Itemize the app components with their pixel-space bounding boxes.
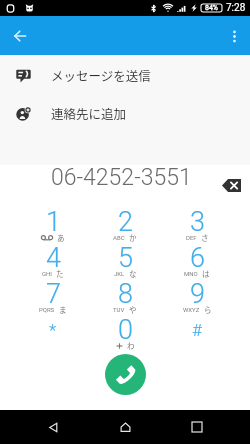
button[interactable]: メッセージを送信 xyxy=(0,56,250,94)
button[interactable]: 0 xyxy=(89,308,161,344)
staticText: 7 xyxy=(46,278,61,310)
staticText: や xyxy=(129,304,137,315)
button[interactable]: # xyxy=(161,308,233,344)
staticText: TUV xyxy=(113,306,125,313)
button[interactable]: 連絡先に追加 xyxy=(0,94,250,132)
button[interactable]: 1 xyxy=(17,200,89,236)
staticText: た xyxy=(56,268,64,279)
staticText: は xyxy=(202,268,210,279)
button[interactable]: 2 xyxy=(89,200,161,236)
button[interactable]: Back xyxy=(17,410,89,444)
button[interactable]: Call xyxy=(105,354,146,395)
button[interactable]: 6 xyxy=(161,236,233,272)
button[interactable]: 3 xyxy=(161,200,233,236)
staticText: か xyxy=(129,232,137,243)
staticText: WXYZ xyxy=(183,306,200,313)
button[interactable]: Back xyxy=(8,24,32,48)
button[interactable]: Backspace xyxy=(219,173,244,198)
staticText: な xyxy=(129,268,137,279)
staticText: GHI xyxy=(42,270,52,277)
staticText: 連絡先に追加 xyxy=(51,104,127,122)
button[interactable]: 8 xyxy=(89,272,161,308)
button[interactable]: Home xyxy=(89,410,161,444)
button[interactable]: 4 xyxy=(17,236,89,272)
staticText: 4 xyxy=(46,242,61,274)
staticText: 84% xyxy=(205,4,218,12)
button[interactable]: 7 xyxy=(17,272,89,308)
staticText: 06-4252-3551 xyxy=(51,164,192,191)
staticText: 3 xyxy=(190,206,205,238)
button[interactable]: * xyxy=(17,308,89,344)
staticText: 6 xyxy=(190,242,205,274)
button[interactable]: 9 xyxy=(161,272,233,308)
staticText: JKL xyxy=(114,270,125,277)
staticText: メッセージを送信 xyxy=(51,66,151,84)
staticText: さ xyxy=(201,232,209,243)
button[interactable]: More options xyxy=(222,24,246,48)
staticText: 1 xyxy=(46,206,61,238)
staticText: * xyxy=(49,320,57,340)
staticText: MNO xyxy=(184,270,198,277)
button[interactable]: 5 xyxy=(89,236,161,272)
staticText: # xyxy=(192,320,202,340)
staticText: 5 xyxy=(118,242,133,274)
staticText: あ xyxy=(57,232,65,243)
staticText: ら xyxy=(204,304,212,315)
staticText: PQRS xyxy=(39,306,55,313)
staticText: 7:28 xyxy=(226,2,246,14)
staticText: 9 xyxy=(190,278,205,310)
button[interactable]: Recents xyxy=(161,410,233,444)
staticText: ABC xyxy=(113,234,125,241)
staticText: 0 xyxy=(118,314,133,346)
staticText: 8 xyxy=(118,278,133,310)
staticText: 2 xyxy=(118,206,133,238)
staticText: わ xyxy=(127,340,135,351)
staticText: ま xyxy=(59,304,67,315)
staticText: DEF xyxy=(186,234,197,241)
